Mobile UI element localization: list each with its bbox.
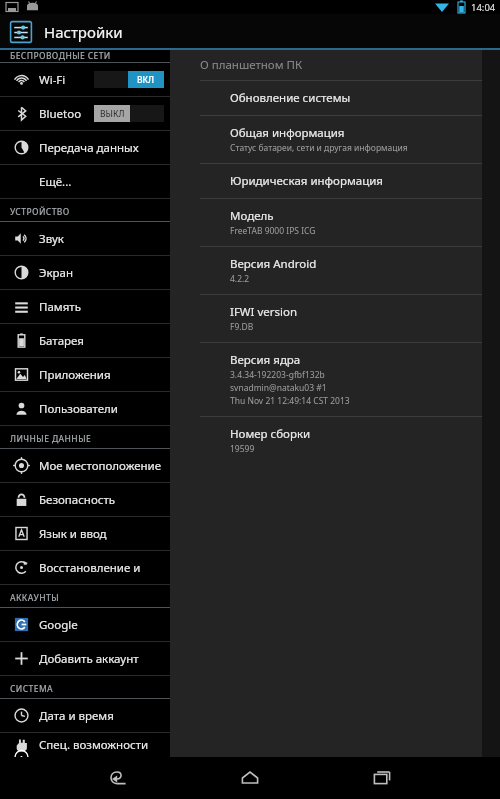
button[interactable]: Экран xyxy=(0,256,170,289)
button[interactable]: Передача данных xyxy=(0,131,170,164)
staticText: F9.DB xyxy=(230,321,254,333)
button[interactable]: Юридическая информация xyxy=(170,164,482,198)
staticText: Ещё... xyxy=(39,174,72,190)
button[interactable]: Недавние xyxy=(359,758,405,798)
button[interactable]: Номер сборки xyxy=(170,417,482,464)
staticText: Bluetoo xyxy=(39,106,82,122)
staticText: СИСТЕМА xyxy=(10,683,54,695)
staticText: Язык и ввод xyxy=(39,526,107,542)
button[interactable]: Версия ядра xyxy=(170,343,482,416)
staticText: Мое местоположение xyxy=(39,458,162,474)
staticText: АККАУНТЫ xyxy=(10,592,59,604)
staticText: ВКЛ xyxy=(137,74,155,86)
staticText: Обновление системы xyxy=(230,90,351,106)
staticText: ЛИЧНЫЕ ДАННЫЕ xyxy=(10,433,92,445)
button[interactable]: Модель xyxy=(170,199,482,246)
button[interactable]: Батарея xyxy=(0,324,170,357)
staticText: 19599 xyxy=(230,443,255,455)
staticText: Спец. возможности xyxy=(39,737,149,753)
button[interactable]: Google xyxy=(0,608,170,641)
staticText: 14:04 xyxy=(471,1,496,14)
staticText: Статус батареи, сети и другая информация xyxy=(230,142,408,154)
staticText: Добавить аккаунт xyxy=(39,651,139,667)
staticText: IFWI version xyxy=(230,304,298,320)
staticText: УСТРОЙСТВО xyxy=(10,206,70,218)
button[interactable]: Спец. возможности xyxy=(0,733,170,757)
button[interactable]: Восстановление и сброс xyxy=(0,551,170,584)
button[interactable]: Добавить аккаунт xyxy=(0,642,170,675)
staticText: Звук xyxy=(39,231,64,247)
staticText: Настройки xyxy=(44,22,123,42)
staticText: 3.4.34-192203-gfbf132b xyxy=(230,369,325,381)
button[interactable]: Дата и время xyxy=(0,699,170,732)
button[interactable]: Звук xyxy=(0,222,170,255)
button[interactable]: Ещё... xyxy=(0,165,170,198)
staticText: Wi-Fi xyxy=(39,72,66,88)
staticText: Батарея xyxy=(39,333,84,349)
button[interactable]: Безопасность xyxy=(0,483,170,516)
button[interactable]: Память xyxy=(0,290,170,323)
staticText: Thu Nov 21 12:49:14 CST 2013 xyxy=(230,395,350,407)
button[interactable]: Wi-Fi xyxy=(0,63,170,96)
staticText: FreeTAB 9000 IPS ICG xyxy=(230,225,316,237)
staticText: Память xyxy=(39,299,81,315)
staticText: Общая информация xyxy=(230,125,345,141)
staticText: Юридическая информация xyxy=(230,173,383,189)
staticText: Дата и время xyxy=(39,708,114,724)
button[interactable]: Главный экран xyxy=(227,758,273,798)
staticText: Приложения xyxy=(39,367,111,383)
button[interactable]: Мое местоположение xyxy=(0,449,170,482)
staticText: ВЫКЛ xyxy=(100,108,125,120)
button[interactable]: Пользователи xyxy=(0,392,170,425)
staticText: Передача данных xyxy=(39,140,139,156)
button[interactable]: Назад xyxy=(95,758,141,798)
button[interactable]: Выключено xyxy=(94,105,164,122)
staticText: Google xyxy=(39,617,78,633)
staticText: Безопасность xyxy=(39,492,116,508)
button[interactable]: Обновление системы xyxy=(170,81,482,115)
button[interactable]: Включено xyxy=(94,71,164,88)
button[interactable]: Bluetoo xyxy=(0,97,170,130)
button[interactable]: IFWI version xyxy=(170,295,482,342)
button[interactable]: Настройки xyxy=(8,19,34,45)
button[interactable]: Приложения xyxy=(0,358,170,391)
staticText: 4.2.2 xyxy=(230,273,250,285)
staticText: Версия Android xyxy=(230,256,317,272)
button[interactable]: Язык и ввод xyxy=(0,517,170,550)
button[interactable]: Версия Android xyxy=(170,247,482,294)
staticText: Модель xyxy=(230,208,274,224)
staticText: Восстановление и сброс xyxy=(39,560,170,576)
staticText: Версия ядра xyxy=(230,352,301,368)
staticText: БЕСПРОВОДНЫЕ СЕТИ xyxy=(10,50,111,62)
staticText: О планшетном ПК xyxy=(200,57,303,73)
staticText: Экран xyxy=(39,265,73,281)
staticText: Номер сборки xyxy=(230,426,311,442)
button[interactable]: Общая информация xyxy=(170,116,482,163)
staticText: svnadmin@nataku03 #1 xyxy=(230,382,327,394)
staticText: Пользователи xyxy=(39,401,118,417)
